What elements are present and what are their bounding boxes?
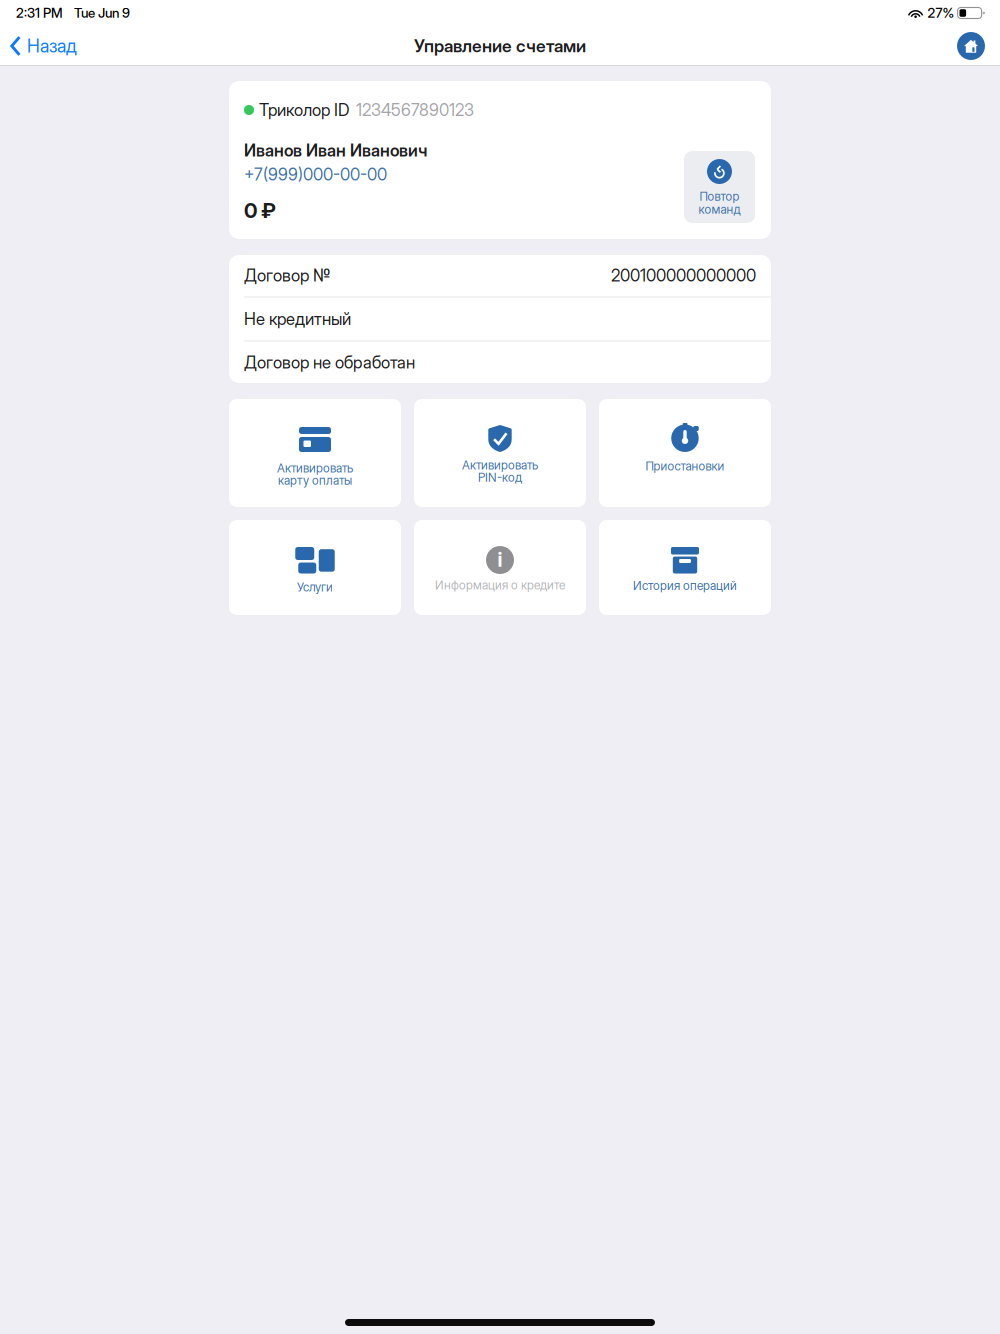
button[interactable]: Активировать (229, 399, 401, 507)
staticText: 27% (928, 5, 955, 21)
staticText: команд (698, 202, 740, 217)
staticText: Иванов Иван Иванович (244, 140, 427, 161)
staticText: Договор № (244, 265, 331, 286)
button[interactable]: Услуги (229, 520, 401, 615)
button[interactable]: Home (953, 28, 989, 64)
button[interactable]: История операций (599, 520, 771, 615)
staticText: Не кредитный (244, 309, 351, 329)
staticText: Триколор ID (259, 100, 349, 120)
staticText: Назад (27, 35, 77, 57)
button[interactable]: Договор № (229, 254, 771, 296)
staticText: Приостановки (645, 459, 724, 473)
staticText: 0 ₽ (244, 198, 276, 223)
staticText: 2:31 PM (16, 5, 63, 21)
staticText: i (497, 547, 502, 572)
staticText: Управление счетами (414, 35, 586, 56)
button[interactable]: Повтор (684, 151, 755, 223)
staticText: PIN-код (478, 470, 522, 484)
staticText: +7(999)000-00-00 (244, 164, 387, 185)
staticText: карту оплаты (278, 473, 352, 487)
staticText: Tue Jun 9 (74, 5, 130, 21)
staticText: Активировать (277, 461, 353, 475)
staticText: 200100000000000 (611, 265, 756, 286)
staticText: 1234567890123 (356, 100, 474, 120)
staticText: Повтор (699, 189, 739, 204)
button[interactable]: i (414, 520, 586, 615)
button[interactable]: Активировать (414, 399, 586, 507)
staticText: Активировать (462, 458, 538, 472)
staticText: История операций (633, 578, 737, 593)
staticText: Услуги (297, 580, 333, 594)
button[interactable]: +7(999)000-00-00 (244, 166, 387, 183)
staticText: Информация о кредите (435, 578, 565, 592)
button[interactable]: Назад (0, 26, 89, 66)
staticText: Договор не обработан (244, 352, 415, 373)
button[interactable]: Приостановки (599, 399, 771, 507)
